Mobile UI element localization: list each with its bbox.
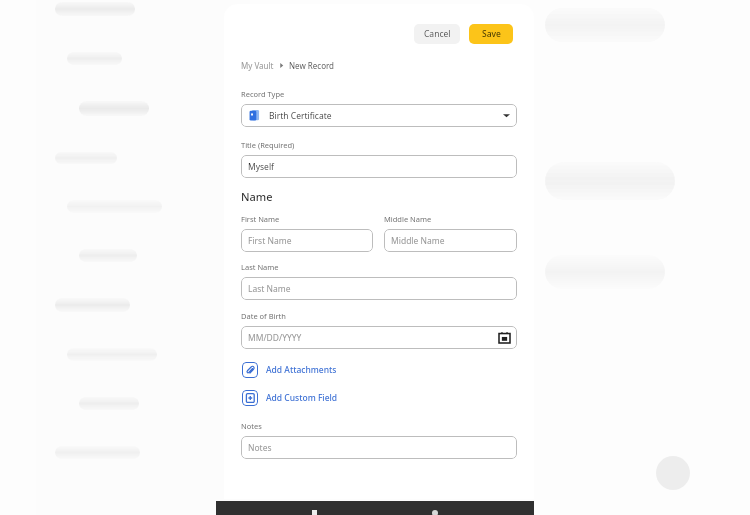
staticText: Middle Name [384, 214, 432, 224]
button[interactable]: Cancel [414, 24, 460, 44]
staticText: Notes [248, 442, 272, 454]
staticText: First Name [248, 235, 292, 247]
button[interactable]: MM/DD/YYYY [241, 326, 517, 349]
button[interactable]: Birth Certificate [241, 104, 517, 127]
button[interactable]: Notes [241, 436, 517, 459]
staticText: First Name [241, 214, 280, 224]
staticText: Title (Required) [241, 140, 295, 150]
staticText: New Record [289, 60, 335, 71]
button[interactable]: First Name [241, 229, 373, 252]
staticText: Middle Name [391, 235, 445, 247]
button[interactable]: Middle Name [384, 229, 517, 252]
button[interactable]: My Vault [241, 60, 274, 71]
button[interactable]: Add Custom Field [241, 388, 339, 408]
button[interactable]: Last Name [241, 277, 517, 300]
staticText: Save [482, 28, 501, 40]
staticText: Date of Birth [241, 311, 286, 321]
button[interactable]: Home [432, 510, 438, 515]
staticText: Add Attachments [266, 364, 337, 376]
staticText: Record Type [241, 89, 285, 99]
staticText: Notes [241, 421, 262, 431]
staticText: Myself [248, 161, 275, 173]
staticText: Birth Certificate [269, 110, 332, 122]
staticText: Add Custom Field [266, 392, 338, 404]
staticText: MM/DD/YYYY [248, 332, 302, 344]
button[interactable]: Myself [241, 155, 517, 178]
staticText: Name [241, 189, 273, 204]
staticText: Last Name [248, 283, 291, 295]
button[interactable]: Add Attachments [241, 360, 338, 380]
staticText: Cancel [424, 28, 451, 40]
button[interactable]: Save [469, 24, 513, 44]
staticText: Last Name [241, 262, 279, 272]
